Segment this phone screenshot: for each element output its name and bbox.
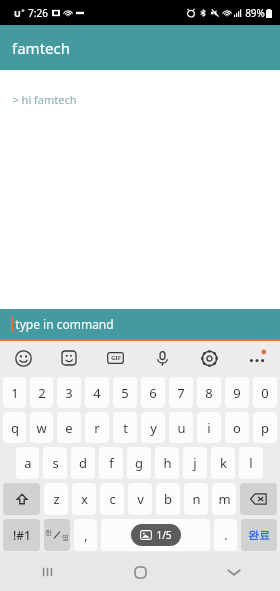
button[interactable]: a (16, 447, 39, 479)
button[interactable]: k (211, 447, 235, 479)
button[interactable]: 4 (85, 377, 109, 408)
staticText: l (249, 454, 253, 472)
button[interactable]: y (141, 412, 165, 443)
staticText: i (207, 419, 211, 437)
staticText: t (123, 419, 128, 437)
button[interactable]: b (156, 483, 180, 515)
button[interactable]: l (239, 447, 263, 479)
staticText: 0 (261, 384, 269, 402)
staticText: 완료 (248, 528, 270, 542)
staticText: u (177, 419, 186, 437)
button[interactable]: Hide keyboard (187, 553, 280, 591)
staticText: U (14, 7, 21, 19)
button[interactable]: Emoji (0, 341, 46, 375)
staticText: 1/5 (156, 528, 172, 542)
staticText: > hi famtech (12, 92, 77, 107)
staticText: 9 (233, 384, 241, 402)
staticText: !#1 (13, 527, 31, 543)
button[interactable]: 6 (141, 377, 165, 408)
staticText: 6 (149, 384, 157, 402)
button[interactable]: 0 (253, 377, 277, 408)
button[interactable]: i (197, 412, 221, 443)
staticText: b (164, 490, 172, 508)
button[interactable]: g (127, 447, 151, 479)
staticText: c (109, 490, 116, 508)
button[interactable]: p (253, 412, 277, 443)
staticText: p (261, 419, 269, 437)
staticText: 영 (62, 533, 69, 542)
staticText: 1 (11, 384, 19, 402)
button[interactable]: GIF (92, 341, 139, 375)
staticText: y (150, 419, 157, 437)
button[interactable]: Keyboard settings (186, 341, 233, 375)
staticText: 7:26 (28, 6, 48, 20)
button[interactable]: 3 (57, 377, 81, 408)
staticText: f (109, 454, 114, 472)
staticText: + (21, 7, 25, 15)
button[interactable]: Voice input (139, 341, 186, 375)
button[interactable]: 1 (3, 377, 26, 408)
button[interactable]: d (71, 447, 95, 479)
button[interactable]: famtech (0, 25, 280, 70)
staticText: 89% (245, 6, 265, 20)
button[interactable]: x (72, 483, 96, 515)
button[interactable]: h (155, 447, 179, 479)
button[interactable]: 7 (169, 377, 193, 408)
button[interactable]: e (57, 412, 81, 443)
staticText: 한 (45, 528, 52, 537)
button[interactable]: 8 (197, 377, 221, 408)
button[interactable]: 완료 (241, 519, 277, 551)
staticText: x (81, 490, 88, 508)
staticText: z (53, 490, 60, 508)
button[interactable]: Home (94, 553, 187, 591)
staticText: e (65, 419, 73, 437)
button[interactable]: u (169, 412, 193, 443)
button[interactable]: Backspace (240, 483, 277, 515)
button[interactable]: 2 (30, 377, 53, 408)
button[interactable]: j (183, 447, 207, 479)
button[interactable]: t (113, 412, 137, 443)
button[interactable]: More options (233, 341, 280, 375)
button[interactable]: v (128, 483, 152, 515)
button[interactable]: n (184, 483, 208, 515)
button[interactable]: r (85, 412, 109, 443)
staticText: w (36, 419, 47, 437)
staticText: 7 (177, 384, 185, 402)
button[interactable]: 9 (225, 377, 249, 408)
button[interactable]: !#1 (3, 519, 40, 551)
staticText: 5 (121, 384, 129, 402)
staticText: r (94, 419, 100, 437)
button[interactable]: type in command (0, 309, 280, 339)
button[interactable]: f (99, 447, 123, 479)
staticText: m (218, 490, 231, 508)
button[interactable]: s (43, 447, 67, 479)
staticText: n (192, 490, 201, 508)
staticText: type in command (15, 316, 114, 332)
staticText: j (193, 454, 197, 472)
button[interactable]: 5 (113, 377, 137, 408)
staticText: q (11, 419, 19, 437)
staticText: o (233, 419, 241, 437)
staticText: d (79, 454, 87, 472)
button[interactable]: Shift (3, 483, 40, 515)
button[interactable]: Recent apps (0, 553, 94, 591)
staticText: famtech (12, 38, 70, 58)
button[interactable]: Korean English toggle (44, 519, 70, 551)
staticText: h (163, 454, 172, 472)
button[interactable]: , (74, 519, 97, 551)
button[interactable]: Space (101, 519, 210, 551)
staticText: 8 (205, 384, 213, 402)
button[interactable]: z (44, 483, 68, 515)
button[interactable]: . (214, 519, 237, 551)
button[interactable]: w (30, 412, 53, 443)
button[interactable]: q (3, 412, 26, 443)
button[interactable]: Stickers (46, 341, 92, 375)
button[interactable]: c (100, 483, 124, 515)
button[interactable]: o (225, 412, 249, 443)
staticText: a (24, 454, 32, 472)
staticText: . (224, 526, 228, 544)
button[interactable]: m (212, 483, 236, 515)
staticText: , (84, 526, 88, 544)
staticText: k (220, 454, 227, 472)
staticText: g (135, 454, 143, 472)
